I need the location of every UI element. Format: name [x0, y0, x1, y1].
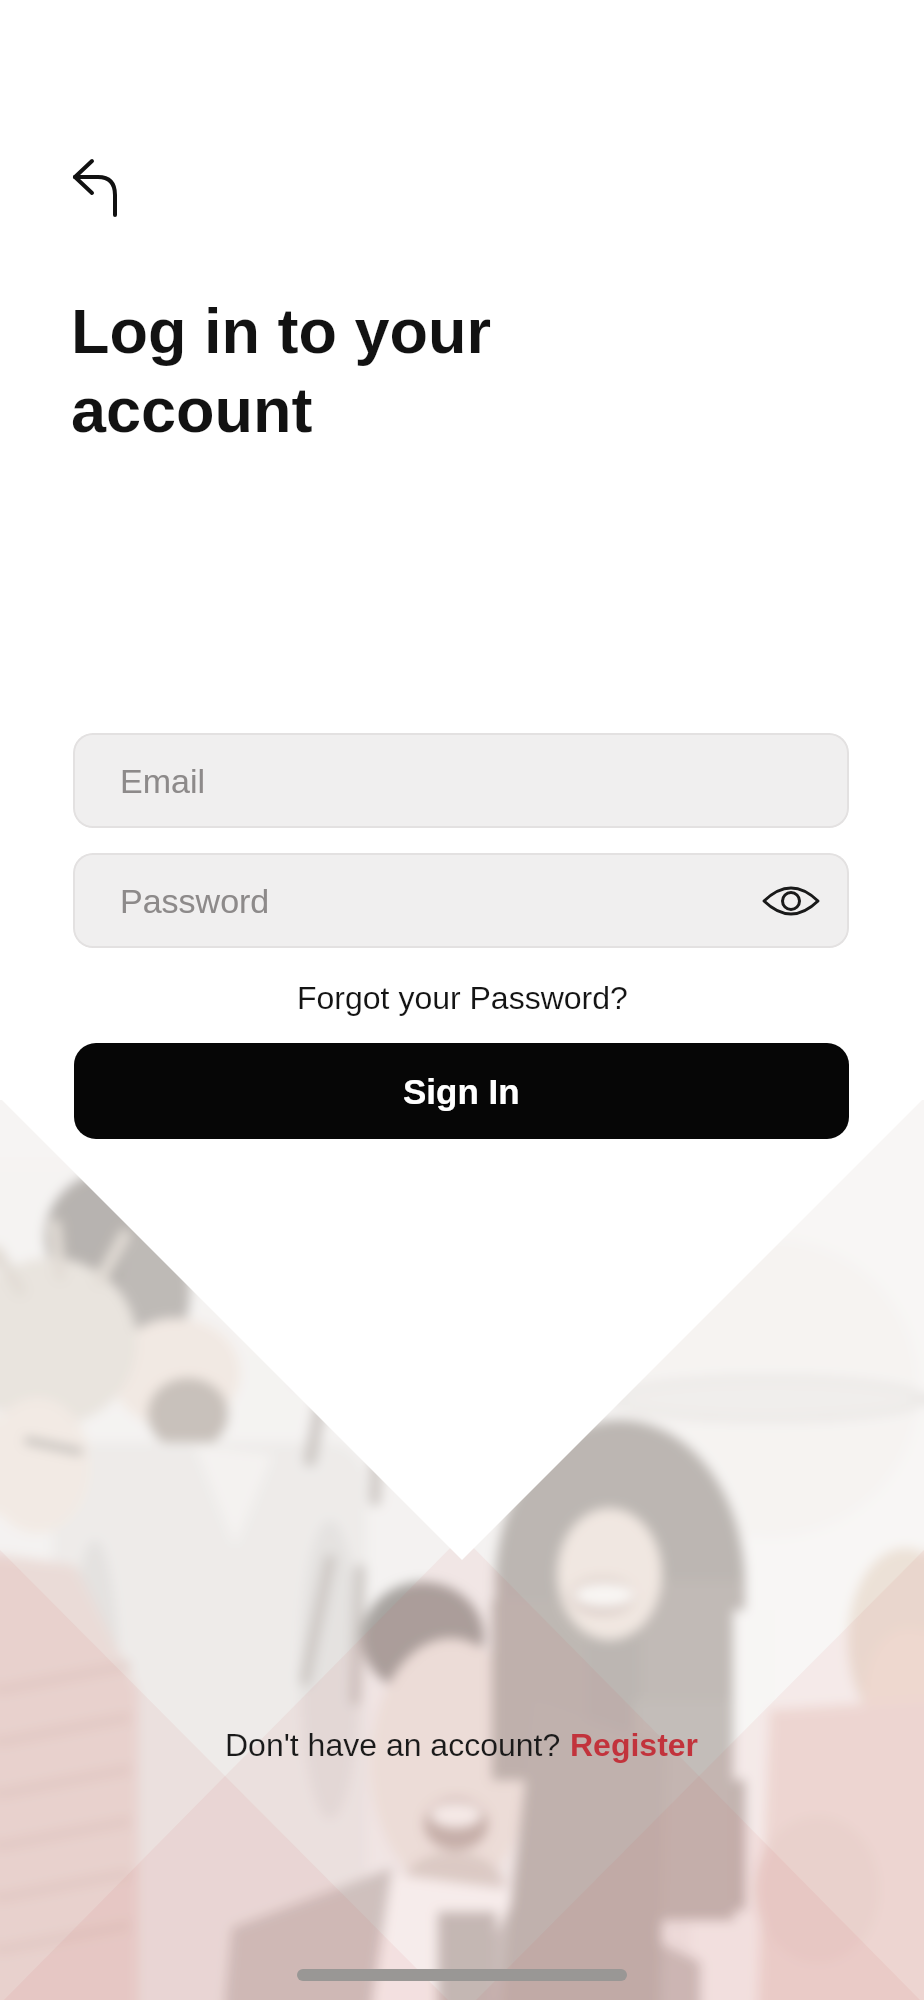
staticText: Register	[570, 1727, 699, 1763]
staticText: Don't have an account?	[225, 1727, 570, 1763]
button[interactable]: Email	[73, 733, 849, 828]
button[interactable]: Sign In	[74, 1043, 849, 1139]
staticText: Email	[120, 762, 206, 800]
button[interactable]: Password	[73, 853, 849, 948]
button[interactable]: Register	[570, 1727, 699, 1763]
button[interactable]: Forgot your Password?	[297, 980, 628, 1016]
staticText: Forgot your Password?	[297, 980, 628, 1016]
button[interactable]	[58, 145, 134, 229]
staticText: Log in to your account	[71, 296, 491, 446]
staticText: Sign In	[403, 1072, 520, 1111]
staticText: Password	[120, 882, 270, 920]
